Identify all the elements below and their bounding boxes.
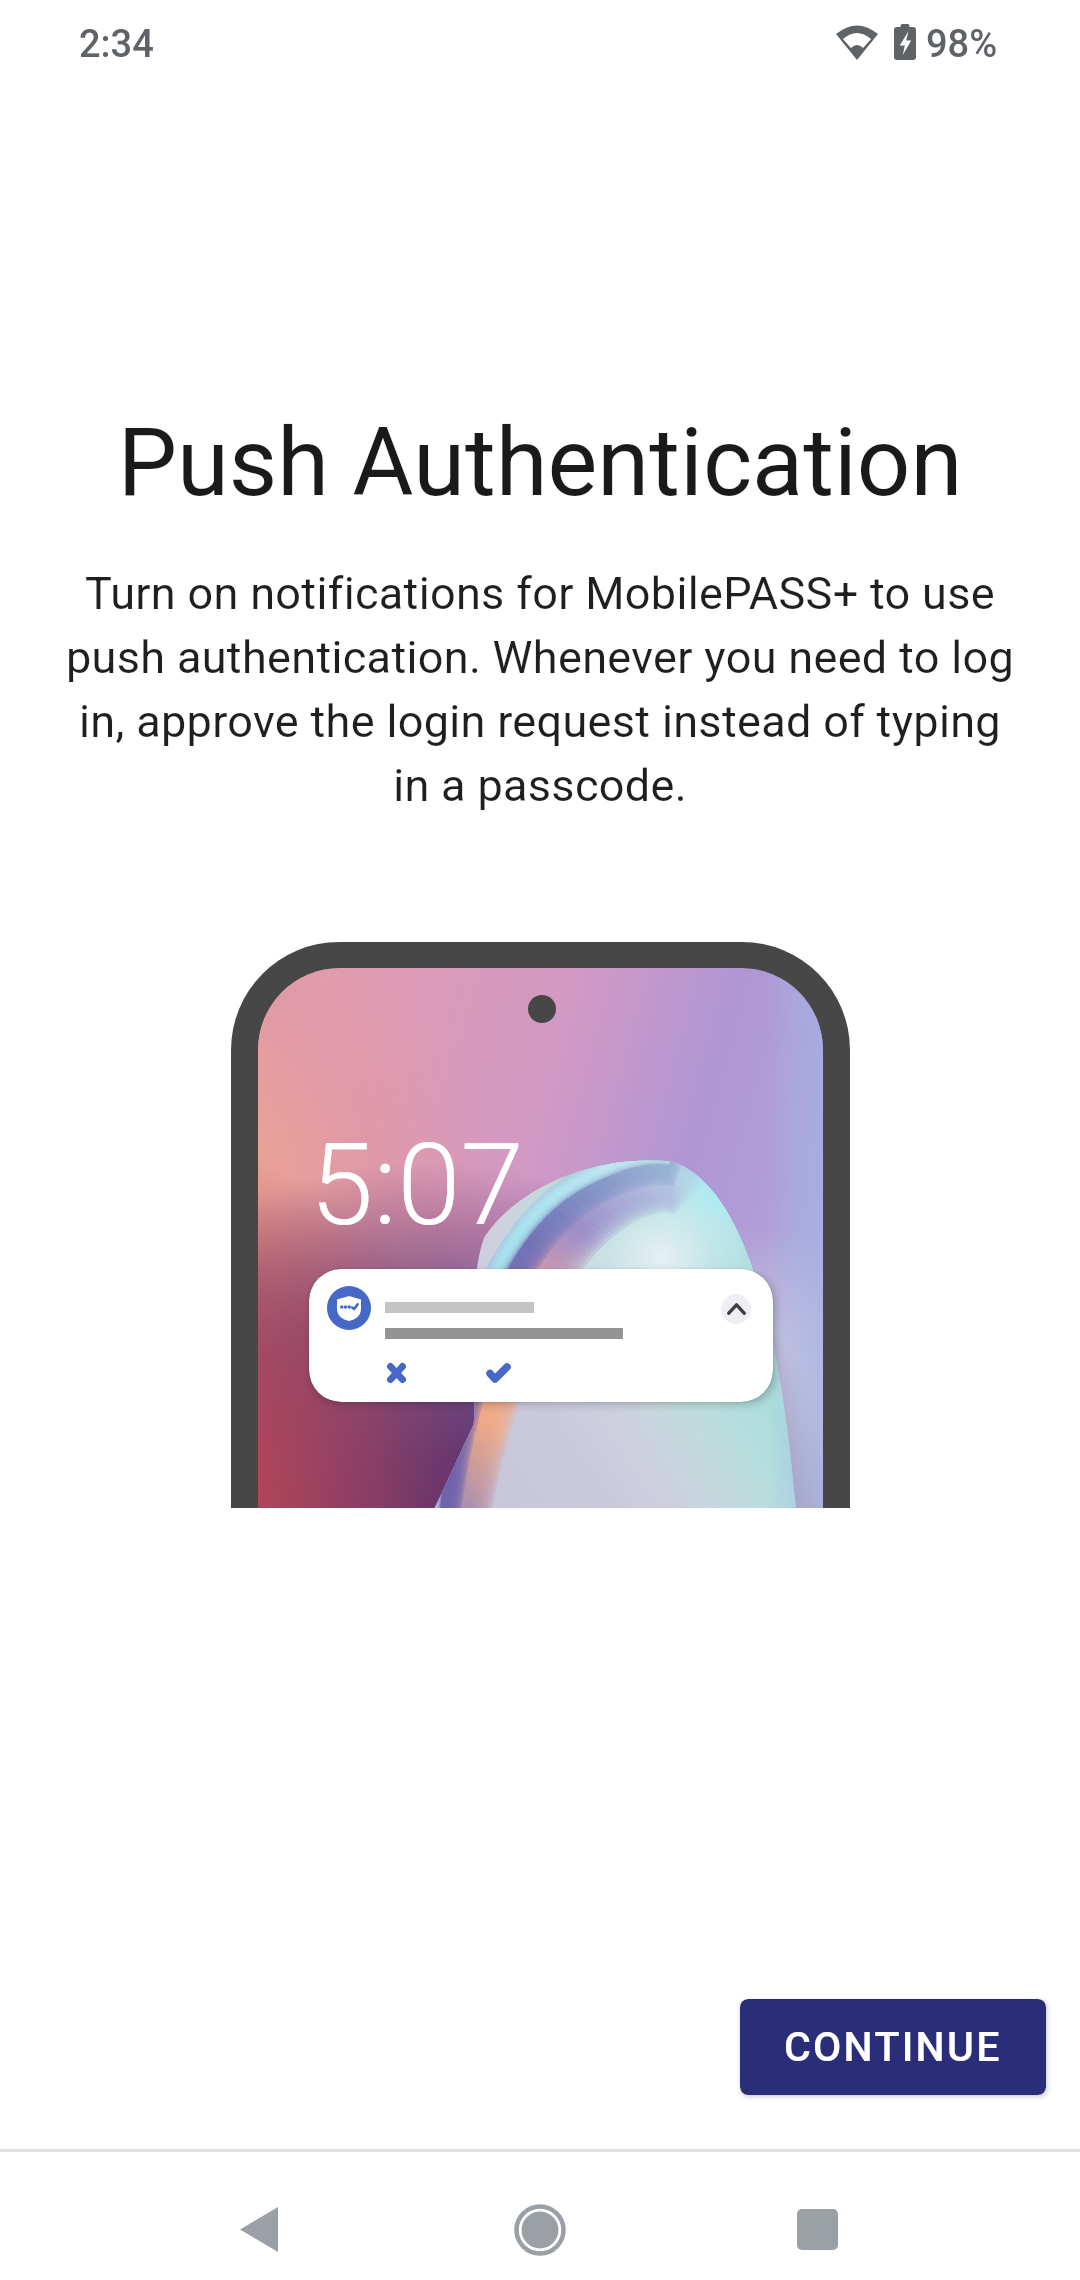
other: Wi-Fi xyxy=(836,24,878,60)
staticText: CONTINUE xyxy=(784,2023,1002,2071)
button[interactable]: Approve xyxy=(470,1345,526,1401)
button[interactable]: Deny xyxy=(368,1345,424,1401)
staticText: 98% xyxy=(926,22,998,67)
other: Battery charging xyxy=(894,24,916,60)
staticText: 5:07 xyxy=(310,1118,524,1252)
button[interactable]: Expand xyxy=(309,1269,773,1402)
staticText: Turn on notifications for MobilePASS+ to… xyxy=(38,567,1042,812)
button[interactable]: Back xyxy=(179,2164,339,2280)
button[interactable]: Home xyxy=(460,2164,620,2280)
staticText: 2:34 xyxy=(79,22,154,67)
button[interactable]: Recent apps xyxy=(737,2164,897,2280)
staticText: Push Authentication xyxy=(40,408,1040,518)
button[interactable]: CONTINUE xyxy=(740,1999,1046,2095)
button[interactable]: Expand xyxy=(721,1294,751,1324)
